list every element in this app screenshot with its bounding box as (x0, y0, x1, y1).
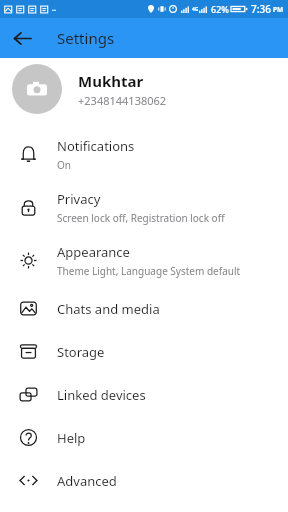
button[interactable]: Advanced (0, 459, 288, 502)
staticText: +2348144138062 (78, 93, 167, 108)
staticText: Screen lock off, Registration lock off (57, 211, 225, 225)
staticText: Mukhtar (78, 71, 144, 91)
staticText: .. (52, 4, 56, 14)
staticText: Privacy (57, 190, 101, 208)
staticText: Chats and media (57, 300, 160, 318)
button[interactable]: Appearance (0, 234, 288, 287)
staticText: Theme Light, Language System default (57, 264, 241, 278)
button[interactable]: Notifications (0, 128, 288, 181)
staticText: Appearance (57, 243, 130, 261)
button[interactable]: Linked devices (0, 373, 288, 416)
button[interactable]: Help (0, 416, 288, 459)
staticText: 62% (211, 3, 229, 15)
button[interactable]: Mukhtar (0, 58, 288, 120)
button[interactable]: Privacy (0, 181, 288, 234)
button[interactable]: Chats and media (0, 287, 288, 330)
staticText: Storage (57, 343, 105, 361)
staticText: 7:36 (251, 2, 271, 16)
staticText: Settings (57, 28, 115, 48)
button[interactable]: Storage (0, 330, 288, 373)
staticText: Linked devices (57, 386, 146, 404)
staticText: PM (273, 5, 284, 14)
button[interactable]: Back (6, 22, 38, 54)
staticText: Notifications (57, 137, 135, 155)
staticText: 4G (192, 6, 199, 13)
staticText: Help (57, 429, 86, 447)
staticText: On (57, 158, 71, 172)
staticText: Advanced (57, 472, 117, 490)
